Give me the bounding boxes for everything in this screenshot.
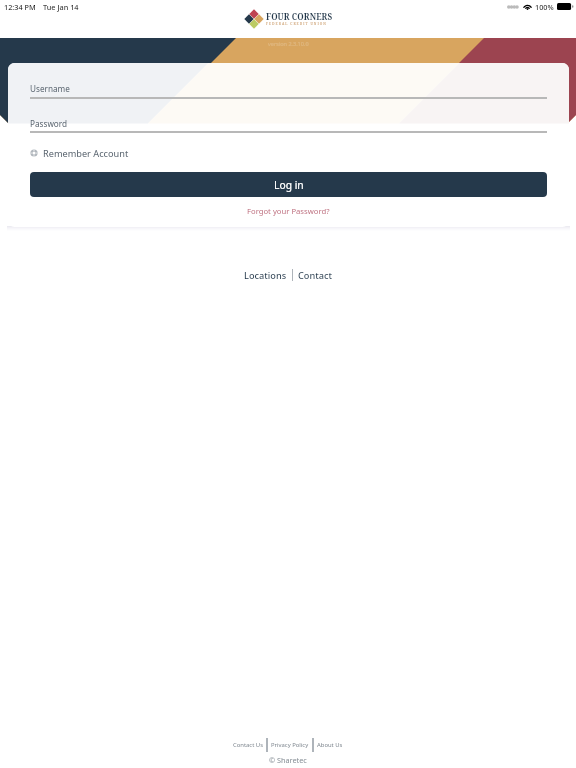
staticText: 12:34 PM [4,2,36,12]
button[interactable]: Remember Account [30,145,129,161]
other: Battery 100 percent [557,3,573,10]
staticText: version 2.3.10.0 [268,40,309,47]
staticText: Remember Account [43,147,129,160]
button[interactable]: About Us [317,741,343,749]
button[interactable]: Log in [30,172,547,197]
button[interactable]: Privacy Policy [271,741,309,749]
staticText: Password [30,118,68,129]
staticText: FEDERAL CREDIT UNION [266,21,327,26]
other: Wi-Fi [523,3,532,10]
staticText: 100% [535,2,554,12]
button[interactable]: Locations [244,269,287,282]
staticText: Tue Jan 14 [43,2,79,12]
button[interactable]: Contact Us [233,741,263,749]
staticText: © Sharetec [269,755,307,765]
button[interactable]: Contact [298,269,333,282]
staticText: FOUR CORNERS [266,11,333,22]
staticText: Log in [274,178,304,192]
button[interactable]: Forgot your Password? [247,206,330,216]
staticText: Username [30,83,70,94]
